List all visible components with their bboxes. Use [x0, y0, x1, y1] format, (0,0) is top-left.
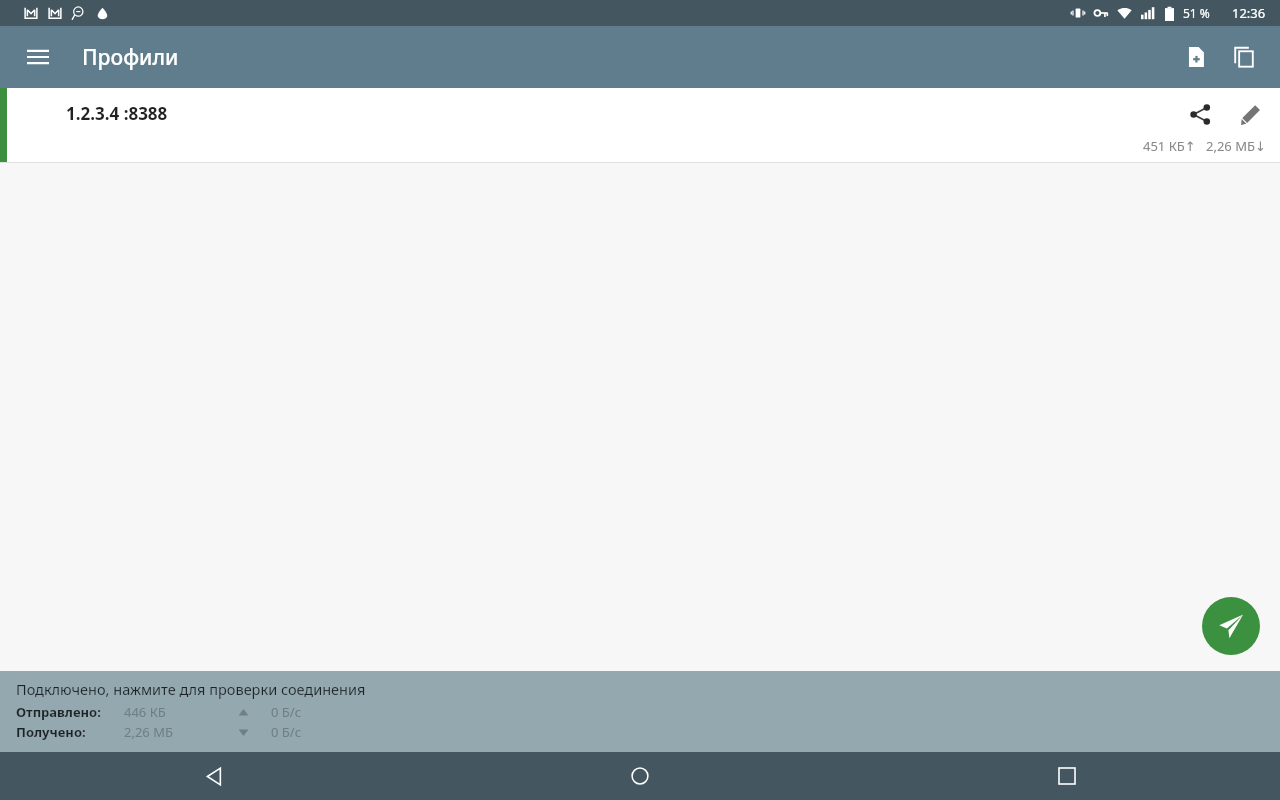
button[interactable]: New profile [1172, 33, 1220, 81]
staticText: 51 % [1183, 5, 1210, 21]
button[interactable]: Connect [1202, 597, 1260, 655]
button[interactable]: 1.2.3.4 :8388 [0, 88, 1280, 163]
staticText: 451 КБ↑ [1143, 137, 1196, 155]
staticText: 12:36 [1232, 4, 1266, 22]
button[interactable]: Edit profile [1230, 94, 1270, 134]
staticText: 0 Б/с [271, 723, 302, 741]
staticText: 2,26 МБ [124, 723, 173, 741]
staticText: Профили [82, 43, 179, 72]
button[interactable]: Home [426, 752, 853, 800]
button[interactable]: Duplicate profile [1220, 33, 1268, 81]
button[interactable]: Back [0, 752, 426, 800]
staticText: 446 КБ [124, 703, 166, 721]
staticText: 0 Б/с [271, 703, 302, 721]
staticText: Получено: [16, 723, 86, 741]
staticText: 2,26 МБ↓ [1206, 137, 1266, 155]
button[interactable]: Recent apps [853, 752, 1280, 800]
staticText: Подключено, нажмите для проверки соедине… [16, 679, 366, 699]
button[interactable]: Подключено, нажмите для проверки соедине… [0, 671, 1280, 752]
staticText: Отправлено: [16, 703, 101, 721]
staticText: 1.2.3.4 :8388 [66, 102, 168, 125]
button[interactable]: Share profile [1180, 94, 1220, 134]
button[interactable]: Open navigation menu [16, 35, 60, 79]
